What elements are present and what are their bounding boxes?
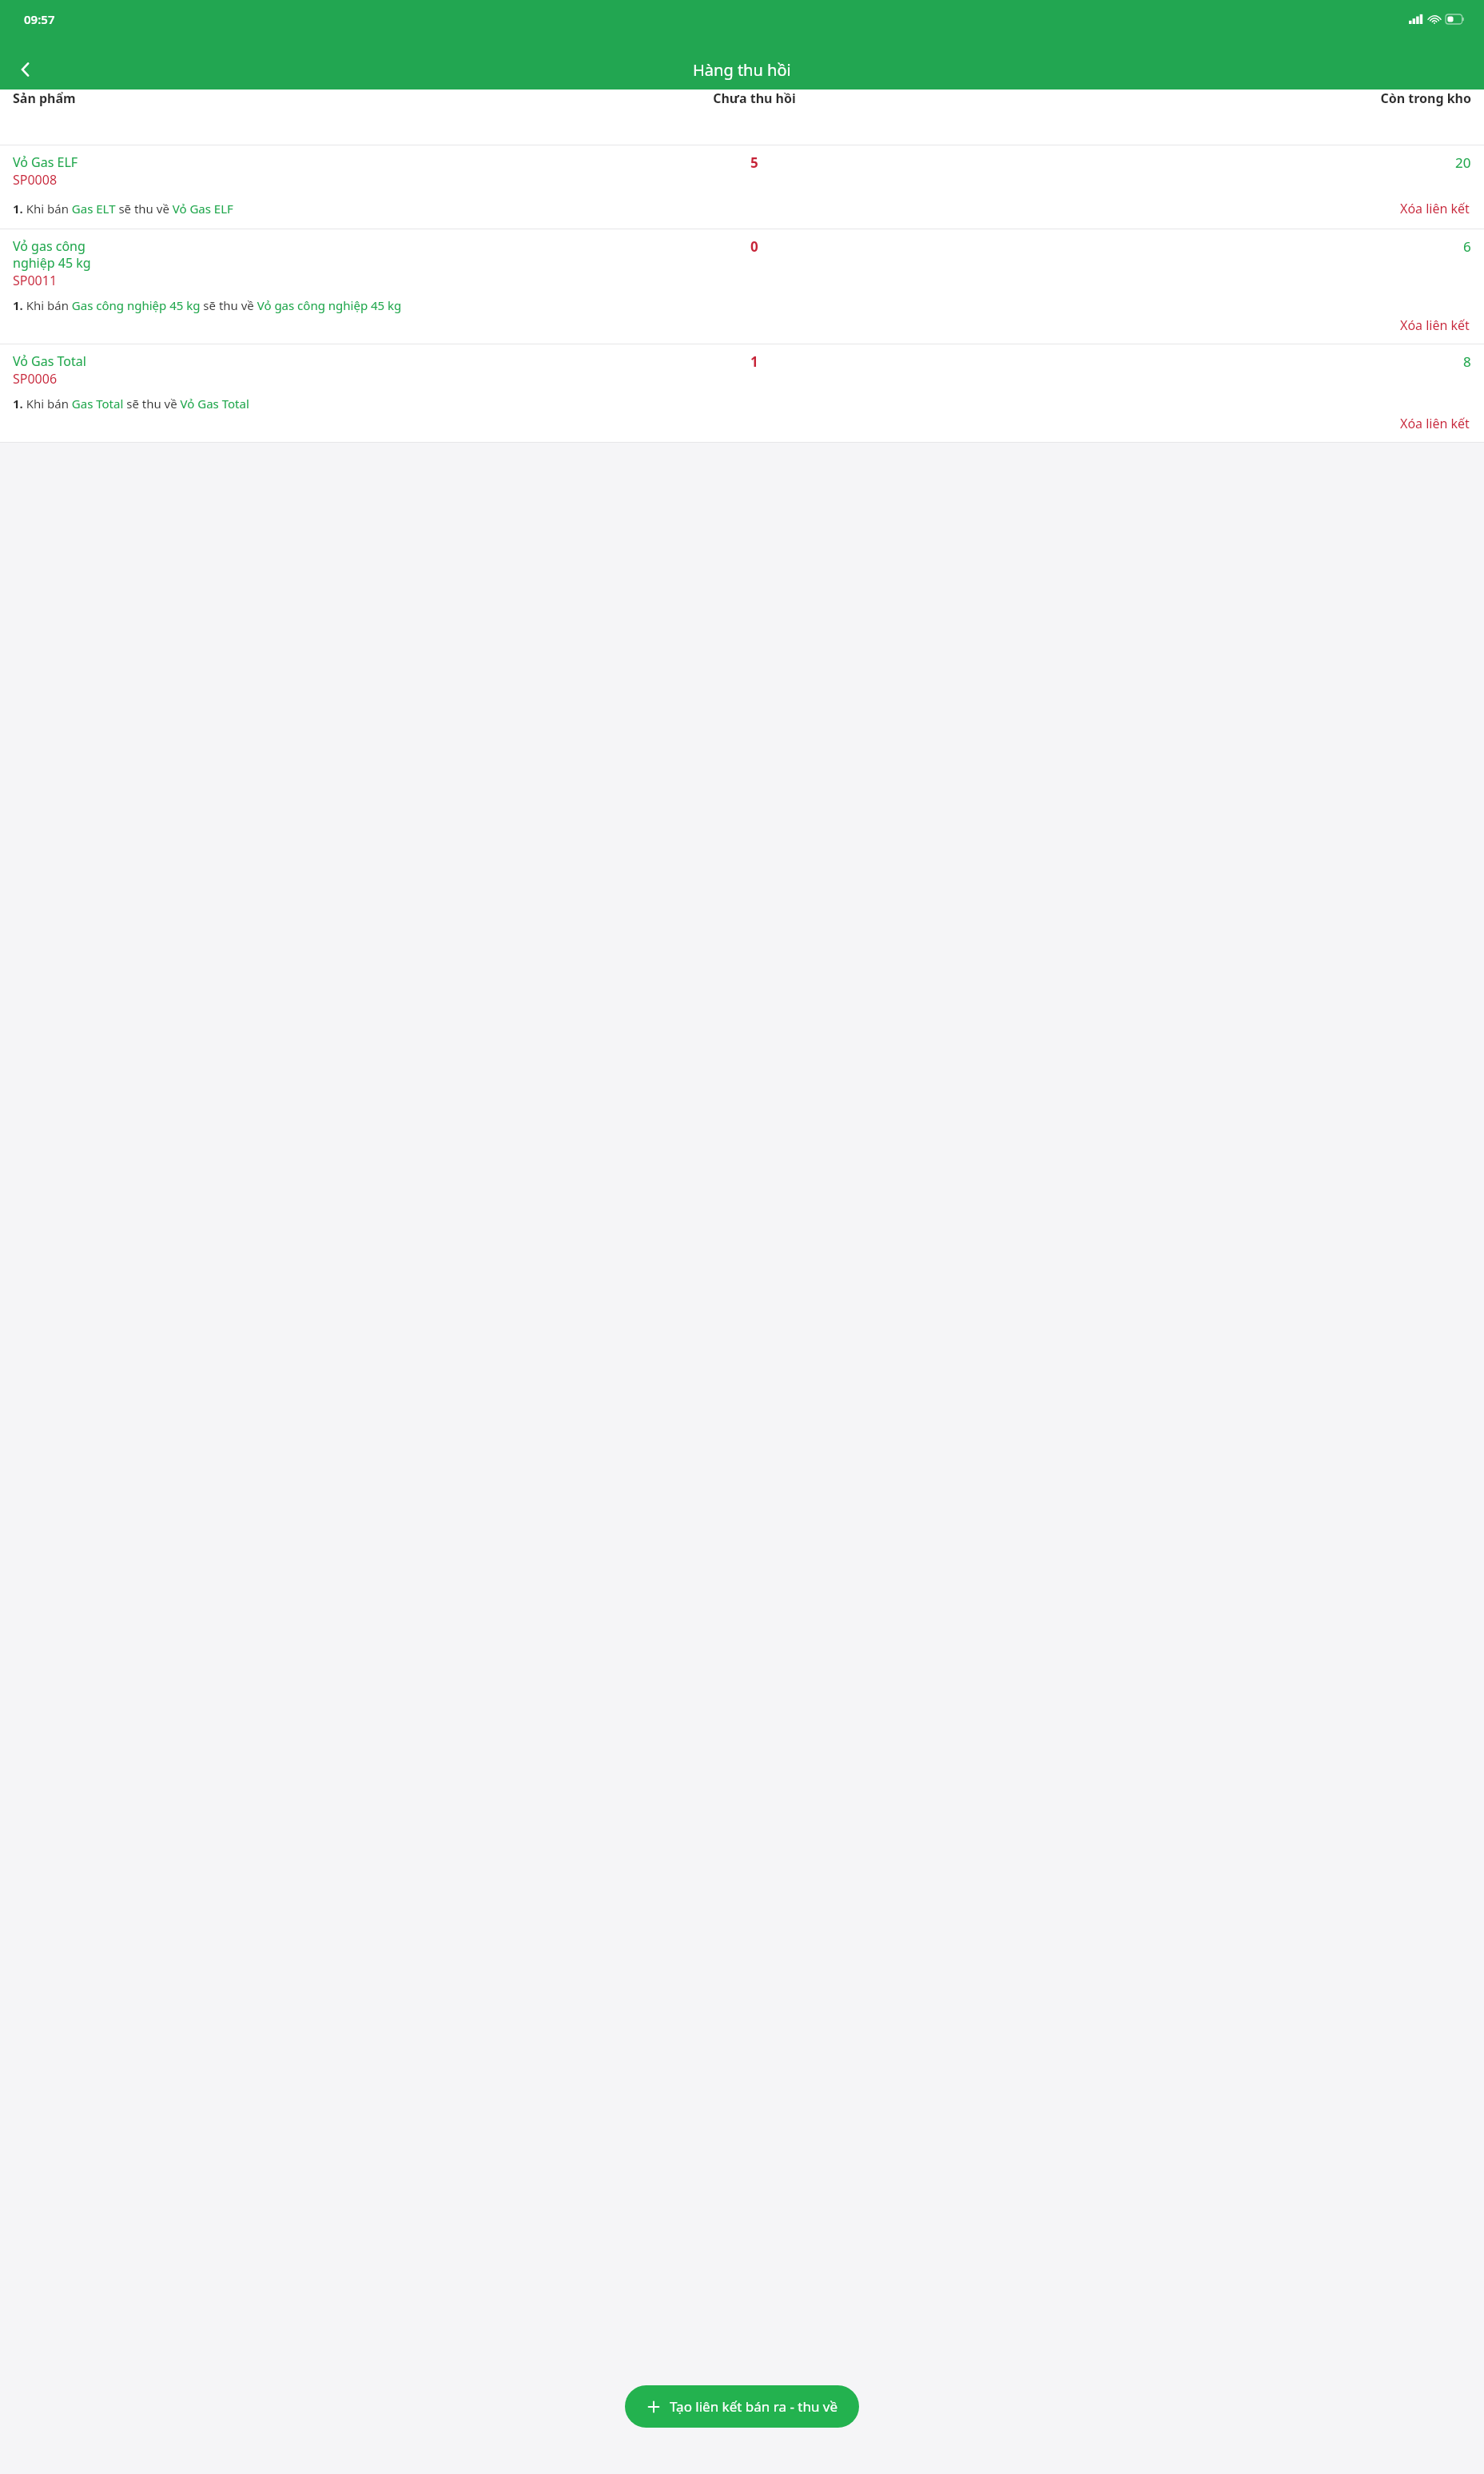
staticText: Hàng thu hồi: [693, 59, 791, 81]
staticText: SP0011: [13, 272, 58, 289]
staticText: Vỏ Gas ELF: [13, 153, 78, 171]
button[interactable]: Xóa liên kết: [1398, 412, 1471, 436]
staticText: Xóa liên kết: [1400, 200, 1470, 217]
staticText: 8: [1463, 352, 1471, 371]
staticText: SP0006: [13, 370, 58, 388]
staticText: Sản phẩm: [13, 89, 523, 107]
staticText: Tạo liên kết bán ra - thu về: [670, 2397, 838, 2416]
staticText: Vỏ Gas Total: [13, 352, 86, 370]
staticText: 20: [1455, 153, 1471, 172]
button[interactable]: Tạo liên kết bán ra - thu về: [625, 2385, 859, 2428]
button[interactable]: Back: [8, 52, 43, 87]
staticText: Chưa thu hồi: [523, 89, 985, 107]
staticText: 1. Khi bán Gas công nghiệp 45 kg sẽ thu …: [13, 297, 402, 313]
staticText: 09:57: [24, 11, 55, 27]
staticText: SP0008: [13, 171, 58, 189]
button[interactable]: Xóa liên kết: [1398, 313, 1471, 337]
staticText: 1. Khi bán Gas Total sẽ thu về Vỏ Gas To…: [13, 396, 249, 412]
staticText: 1: [750, 352, 758, 371]
button[interactable]: Vỏ Gas Total: [0, 344, 1484, 443]
staticText: Xóa liên kết: [1400, 316, 1470, 334]
staticText: 1. Khi bán Gas ELT sẽ thu về Vỏ Gas ELF: [13, 201, 1398, 217]
staticText: 6: [1463, 237, 1471, 256]
staticText: Xóa liên kết: [1400, 415, 1470, 432]
staticText: Vỏ gas công nghiệp 45 kg: [13, 237, 91, 272]
button[interactable]: Vỏ gas công nghiệp 45 kg: [0, 229, 1484, 344]
staticText: 0: [750, 237, 758, 256]
staticText: 5: [750, 153, 758, 172]
staticText: Còn trong kho: [985, 89, 1471, 107]
button[interactable]: Xóa liên kết: [1398, 197, 1471, 221]
button[interactable]: Vỏ Gas ELF: [0, 145, 1484, 229]
